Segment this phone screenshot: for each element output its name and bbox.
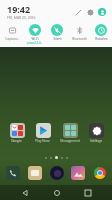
staticText: FRI, MAR 25, 2016	[7, 15, 36, 20]
button[interactable]: Messages	[25, 163, 44, 182]
button[interactable]: Back	[17, 185, 32, 200]
button[interactable]: Recents	[80, 185, 95, 200]
button[interactable]: Phone	[3, 163, 22, 182]
button[interactable]: Photos	[68, 163, 87, 182]
button[interactable]: Bluetooth	[68, 23, 90, 47]
staticText: Wi-Fi	[31, 37, 39, 41]
button[interactable]: Capture+	[0, 23, 23, 47]
button[interactable]: Apps	[47, 163, 66, 182]
staticText: Management	[60, 139, 80, 143]
button[interactable]: User profile	[96, 6, 108, 18]
button[interactable]: Settings	[84, 6, 96, 18]
staticText: Silent	[53, 37, 62, 41]
button[interactable]: Home	[49, 185, 64, 200]
staticText: Capture+	[5, 37, 19, 41]
button[interactable]: Management	[58, 122, 81, 143]
staticText: Play Store	[35, 139, 50, 143]
button[interactable]: Play Store	[31, 122, 54, 143]
staticText: Google	[11, 139, 22, 143]
button[interactable]: Google	[5, 122, 28, 143]
staticText: 19:42	[7, 3, 31, 15]
staticText: pinos2-2.4...	[27, 41, 43, 45]
staticText: Rotation	[95, 37, 108, 41]
staticText: Bluetooth	[72, 37, 87, 41]
button[interactable]: Chrome	[90, 163, 109, 182]
staticText: Settings	[90, 139, 102, 143]
button[interactable]: Settings	[84, 122, 107, 143]
button[interactable]: Wi-Fi	[23, 23, 46, 47]
button[interactable]: Silent	[46, 23, 68, 47]
button[interactable]: Rotation	[90, 23, 112, 47]
button[interactable]: Edit	[72, 6, 84, 18]
